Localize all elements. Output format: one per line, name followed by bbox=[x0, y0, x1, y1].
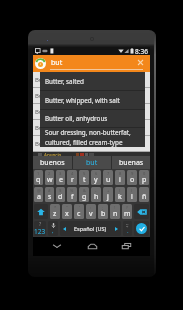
staticText: 1 bbox=[37, 171, 40, 176]
button[interactable]: Butter, whipped, with salt bbox=[40, 91, 145, 109]
staticText: ? bbox=[126, 205, 128, 210]
button[interactable]: Butter, salted bbox=[33, 72, 150, 87]
staticText: + bbox=[107, 188, 110, 193]
staticText: buenas bbox=[119, 158, 144, 168]
button[interactable]: 9 bbox=[127, 170, 137, 185]
button[interactable]: Backspace bbox=[134, 204, 149, 219]
staticText: buenos bbox=[40, 158, 65, 168]
button[interactable]: Butter, salted bbox=[33, 120, 150, 135]
button[interactable]: Butter oil, anhydrous bbox=[40, 110, 145, 127]
button[interactable]: Butter, salted bbox=[33, 136, 150, 151]
button[interactable]: but bbox=[33, 55, 150, 72]
staticText: ( bbox=[119, 188, 121, 193]
staticText: ' bbox=[79, 205, 80, 210]
staticText: 0 bbox=[143, 171, 146, 176]
button[interactable]: 4 bbox=[67, 170, 77, 185]
button[interactable]: & bbox=[79, 187, 89, 202]
button[interactable]: Recents bbox=[115, 238, 137, 254]
button[interactable]: Period bbox=[123, 221, 132, 236]
staticText: h bbox=[94, 192, 99, 202]
staticText: ñ bbox=[142, 192, 147, 202]
staticText: Butter, salted bbox=[45, 77, 84, 86]
button[interactable]: Butter, salted bbox=[40, 72, 145, 90]
button[interactable]: Voice input bbox=[48, 221, 58, 236]
staticText: v bbox=[89, 209, 93, 219]
staticText: cultured, filled cream-type bbox=[45, 138, 123, 147]
button[interactable]: Butter, salted bbox=[33, 88, 150, 103]
staticText: w bbox=[47, 175, 53, 185]
button[interactable]: 1 bbox=[34, 170, 43, 185]
staticText: * bbox=[54, 205, 57, 210]
staticText: d bbox=[58, 192, 63, 202]
staticText: @ bbox=[37, 188, 41, 193]
button[interactable]: ; bbox=[98, 204, 108, 219]
button[interactable]: Shift bbox=[34, 204, 48, 219]
staticText: b bbox=[101, 209, 106, 219]
staticText: k bbox=[118, 192, 122, 202]
button[interactable]: Enter bbox=[134, 221, 149, 236]
button[interactable]: Home bbox=[81, 238, 103, 254]
staticText: & bbox=[83, 188, 86, 193]
button[interactable]: 7 bbox=[103, 170, 113, 185]
staticText: :; bbox=[126, 222, 129, 229]
staticText: n bbox=[113, 209, 118, 219]
staticText: i bbox=[119, 175, 121, 185]
staticText: " bbox=[66, 205, 68, 210]
staticText: 6 bbox=[95, 171, 98, 176]
staticText: % bbox=[70, 188, 74, 193]
button[interactable]: ( bbox=[115, 187, 125, 202]
staticText: Butter oil, anhydrous bbox=[45, 114, 108, 123]
staticText: $ bbox=[59, 188, 62, 193]
button[interactable]: 2 bbox=[45, 170, 54, 185]
button[interactable]: 5 bbox=[79, 170, 89, 185]
button[interactable]: $ bbox=[56, 187, 65, 202]
staticText: j bbox=[107, 192, 109, 202]
button[interactable]: but bbox=[73, 156, 111, 169]
staticText: u bbox=[106, 175, 111, 185]
button[interactable]: buenas bbox=[112, 156, 150, 169]
staticText: Español (US) bbox=[74, 225, 107, 232]
button[interactable]: 8 bbox=[115, 170, 125, 185]
button[interactable]: Back bbox=[46, 238, 68, 254]
button[interactable]: * bbox=[50, 204, 60, 219]
button[interactable]: Space bbox=[60, 221, 121, 236]
staticText: Butter, salted bbox=[35, 108, 73, 116]
button[interactable]: buenos bbox=[33, 156, 72, 169]
staticText: m bbox=[124, 209, 131, 219]
staticText: ) bbox=[131, 188, 133, 193]
button[interactable]: 0 bbox=[139, 170, 149, 185]
button[interactable]: % bbox=[67, 187, 77, 202]
button[interactable]: ! bbox=[110, 204, 120, 219]
button[interactable]: # bbox=[45, 187, 54, 202]
staticText: y bbox=[94, 175, 98, 185]
staticText: # bbox=[48, 188, 51, 193]
staticText: Butter, whipped, with salt bbox=[45, 96, 120, 105]
staticText: 2 bbox=[48, 171, 51, 176]
button[interactable]: " bbox=[62, 204, 72, 219]
button[interactable]: 6 bbox=[91, 170, 101, 185]
staticText: g bbox=[82, 192, 87, 202]
button[interactable]: Sour dressing, non-butterfat, bbox=[40, 128, 145, 147]
button[interactable]: 3 bbox=[56, 170, 65, 185]
staticText: ! bbox=[114, 205, 116, 210]
staticText: 4 bbox=[71, 171, 74, 176]
staticText: x bbox=[65, 209, 69, 219]
staticText: Butter, salted bbox=[35, 92, 73, 100]
button[interactable]: - bbox=[91, 187, 101, 202]
button[interactable]: ' bbox=[74, 204, 84, 219]
button[interactable]: ñ bbox=[139, 187, 149, 202]
staticText: t bbox=[83, 175, 86, 185]
button[interactable]: Symbols bbox=[34, 221, 46, 236]
button[interactable]: @ bbox=[34, 187, 43, 202]
staticText: o bbox=[130, 175, 135, 185]
button[interactable]: : bbox=[86, 204, 96, 219]
button[interactable]: Clear search bbox=[134, 54, 146, 71]
button[interactable]: ? bbox=[122, 204, 132, 219]
button[interactable]: + bbox=[103, 187, 113, 202]
button[interactable]: Butter, salted bbox=[33, 104, 150, 119]
staticText: , bbox=[52, 227, 54, 235]
staticText: but bbox=[86, 158, 98, 168]
staticText: Sour dressing, non-butterfat, bbox=[45, 128, 131, 137]
button[interactable]: ) bbox=[127, 187, 137, 202]
